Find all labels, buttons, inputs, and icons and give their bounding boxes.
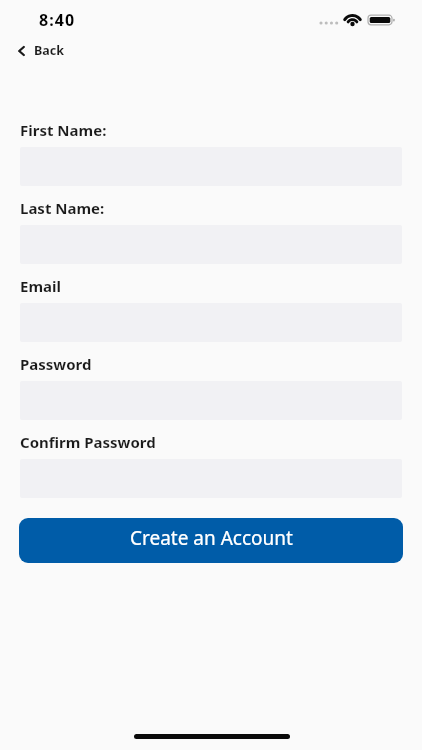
staticText: Confirm Password <box>20 432 156 452</box>
staticText: Last Name: <box>20 198 105 218</box>
staticText: Password <box>20 354 92 374</box>
staticText: Create an Account <box>130 525 293 551</box>
button[interactable]: Back <box>12 38 71 63</box>
staticText: Email <box>20 276 61 296</box>
staticText: First Name: <box>20 120 107 140</box>
staticText: Back <box>34 42 65 59</box>
button[interactable]: Create an Account <box>19 518 403 563</box>
staticText: 8:40 <box>39 9 76 31</box>
